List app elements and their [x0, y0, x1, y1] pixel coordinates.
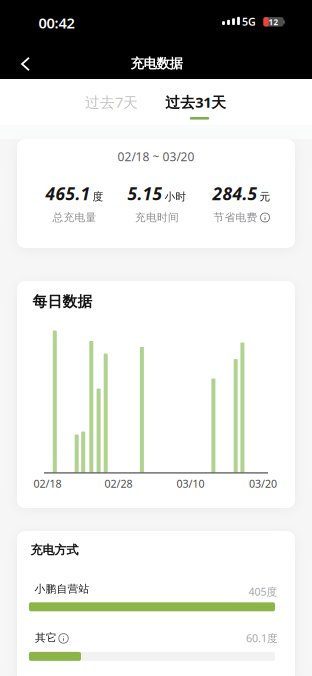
staticText: 5G [242, 14, 256, 29]
button[interactable]: 过去31天 [153, 82, 239, 122]
staticText: 度 [92, 190, 103, 203]
staticText: 总充电量 [52, 211, 96, 224]
staticText: 充电数据 [130, 55, 182, 72]
staticText: 5.15 [127, 182, 162, 205]
staticText: 其它 [35, 631, 57, 644]
staticText: 02/18 ~ 03/20 [117, 148, 194, 164]
staticText: 充电方式 [30, 543, 78, 557]
staticText: 465.1 [45, 182, 90, 205]
staticText: 12 [268, 17, 278, 27]
button[interactable] [260, 213, 269, 222]
staticText: 过去7天 [85, 92, 138, 112]
staticText: 00:42 [38, 13, 74, 33]
staticText: 02/18 [33, 476, 61, 491]
staticText: 284.5 [212, 182, 257, 205]
staticText: 03/10 [176, 476, 204, 491]
staticText: 小时 [164, 190, 186, 203]
staticText: 过去31天 [165, 92, 226, 112]
staticText: 元 [259, 190, 270, 203]
button[interactable] [59, 634, 68, 643]
button[interactable] [10, 46, 40, 82]
staticText: 03/20 [249, 476, 277, 491]
staticText: 节省电费 [213, 211, 257, 224]
staticText: 小鹏自营站 [34, 582, 89, 595]
staticText: 405度 [248, 584, 277, 599]
staticText: 60.1度 [246, 631, 278, 645]
button[interactable]: 过去7天 [71, 82, 151, 122]
staticText: 02/28 [104, 476, 132, 491]
staticText: 每日数据 [32, 292, 92, 310]
staticText: 充电时间 [135, 211, 179, 224]
